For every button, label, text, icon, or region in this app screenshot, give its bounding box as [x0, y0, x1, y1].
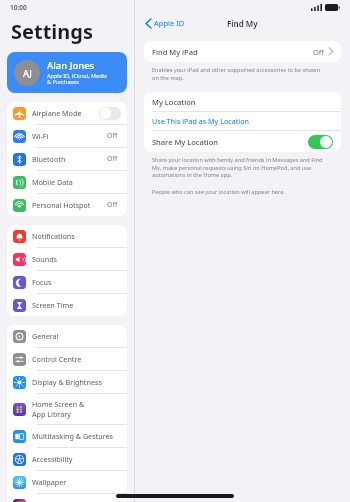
- staticText: Wi-Fi: [32, 131, 49, 141]
- staticText: Settings: [11, 18, 93, 45]
- staticText: Display & Brightness: [32, 377, 102, 387]
- staticText: Enables your iPad and other supported ac…: [152, 66, 327, 82]
- button[interactable]: Home Screen &: [7, 394, 127, 424]
- staticText: Off: [107, 200, 118, 210]
- staticText: Bluetooth: [32, 154, 66, 164]
- button[interactable]: Personal Hotspot: [7, 194, 127, 216]
- staticText: AJ: [23, 67, 32, 79]
- staticText: Share My Location: [152, 137, 308, 147]
- staticText: Personal Hotspot: [32, 200, 91, 210]
- button[interactable]: Screen Time: [7, 294, 127, 316]
- staticText: Sounds: [32, 254, 58, 264]
- staticText: Airplane Mode: [32, 108, 82, 118]
- button[interactable]: AJ: [7, 52, 127, 93]
- staticText: Use This iPad as My Location: [152, 116, 249, 126]
- staticText: Notifications: [32, 231, 75, 241]
- staticText: Accessibility: [32, 454, 73, 464]
- button[interactable]: My Location: [144, 92, 341, 111]
- staticText: Find My: [227, 18, 258, 29]
- staticText: Apple ID, iCloud, Media & Purchases: [47, 72, 108, 86]
- button[interactable]: Focus: [7, 271, 127, 293]
- staticText: 10:00: [10, 3, 27, 12]
- staticText: Screen Time: [32, 300, 74, 310]
- staticText: App Library: [32, 409, 71, 419]
- staticText: Mobile Data: [32, 177, 73, 187]
- button[interactable]: Display & Brightness: [7, 371, 127, 393]
- staticText: Control Centre: [32, 354, 82, 364]
- button[interactable]: Notifications: [7, 225, 127, 247]
- button[interactable]: Wi-Fi: [7, 125, 127, 147]
- staticText: Focus: [32, 277, 52, 287]
- button[interactable]: Apple ID: [144, 17, 187, 29]
- button[interactable]: Control Centre: [7, 348, 127, 370]
- staticText: Multitasking & Gestures: [32, 431, 113, 441]
- staticText: Home Screen &: [32, 399, 85, 409]
- button[interactable]: Sounds: [7, 248, 127, 270]
- staticText: My Location: [152, 97, 196, 107]
- staticText: Off: [313, 47, 325, 57]
- staticText: Share your location with family and frie…: [152, 156, 331, 179]
- button[interactable]: Find My iPad: [144, 41, 341, 62]
- button[interactable]: Bluetooth: [7, 148, 127, 170]
- button[interactable]: Wallpaper: [7, 471, 127, 493]
- button[interactable]: General: [7, 325, 127, 347]
- button[interactable]: Mobile Data: [7, 171, 127, 193]
- button[interactable]: Multitasking & Gestures: [7, 425, 127, 447]
- staticText: Find My iPad: [152, 47, 313, 57]
- button[interactable]: Airplane Mode: [7, 102, 127, 124]
- staticText: General: [32, 331, 59, 341]
- button[interactable]: Toggle: [99, 107, 121, 120]
- staticText: Wallpaper: [32, 477, 67, 487]
- staticText: Apple ID: [154, 18, 185, 28]
- button[interactable]: Siri & Search: [7, 494, 127, 502]
- button[interactable]: Toggle: [308, 135, 333, 149]
- staticText: Alan Jones: [47, 59, 95, 72]
- button[interactable]: Share My Location: [144, 131, 341, 152]
- button[interactable]: Use This iPad as My Location: [144, 112, 341, 130]
- staticText: People who can see your location will ap…: [152, 188, 285, 196]
- button[interactable]: Accessibility: [7, 448, 127, 470]
- staticText: Off: [107, 131, 118, 141]
- staticText: Off: [107, 154, 118, 164]
